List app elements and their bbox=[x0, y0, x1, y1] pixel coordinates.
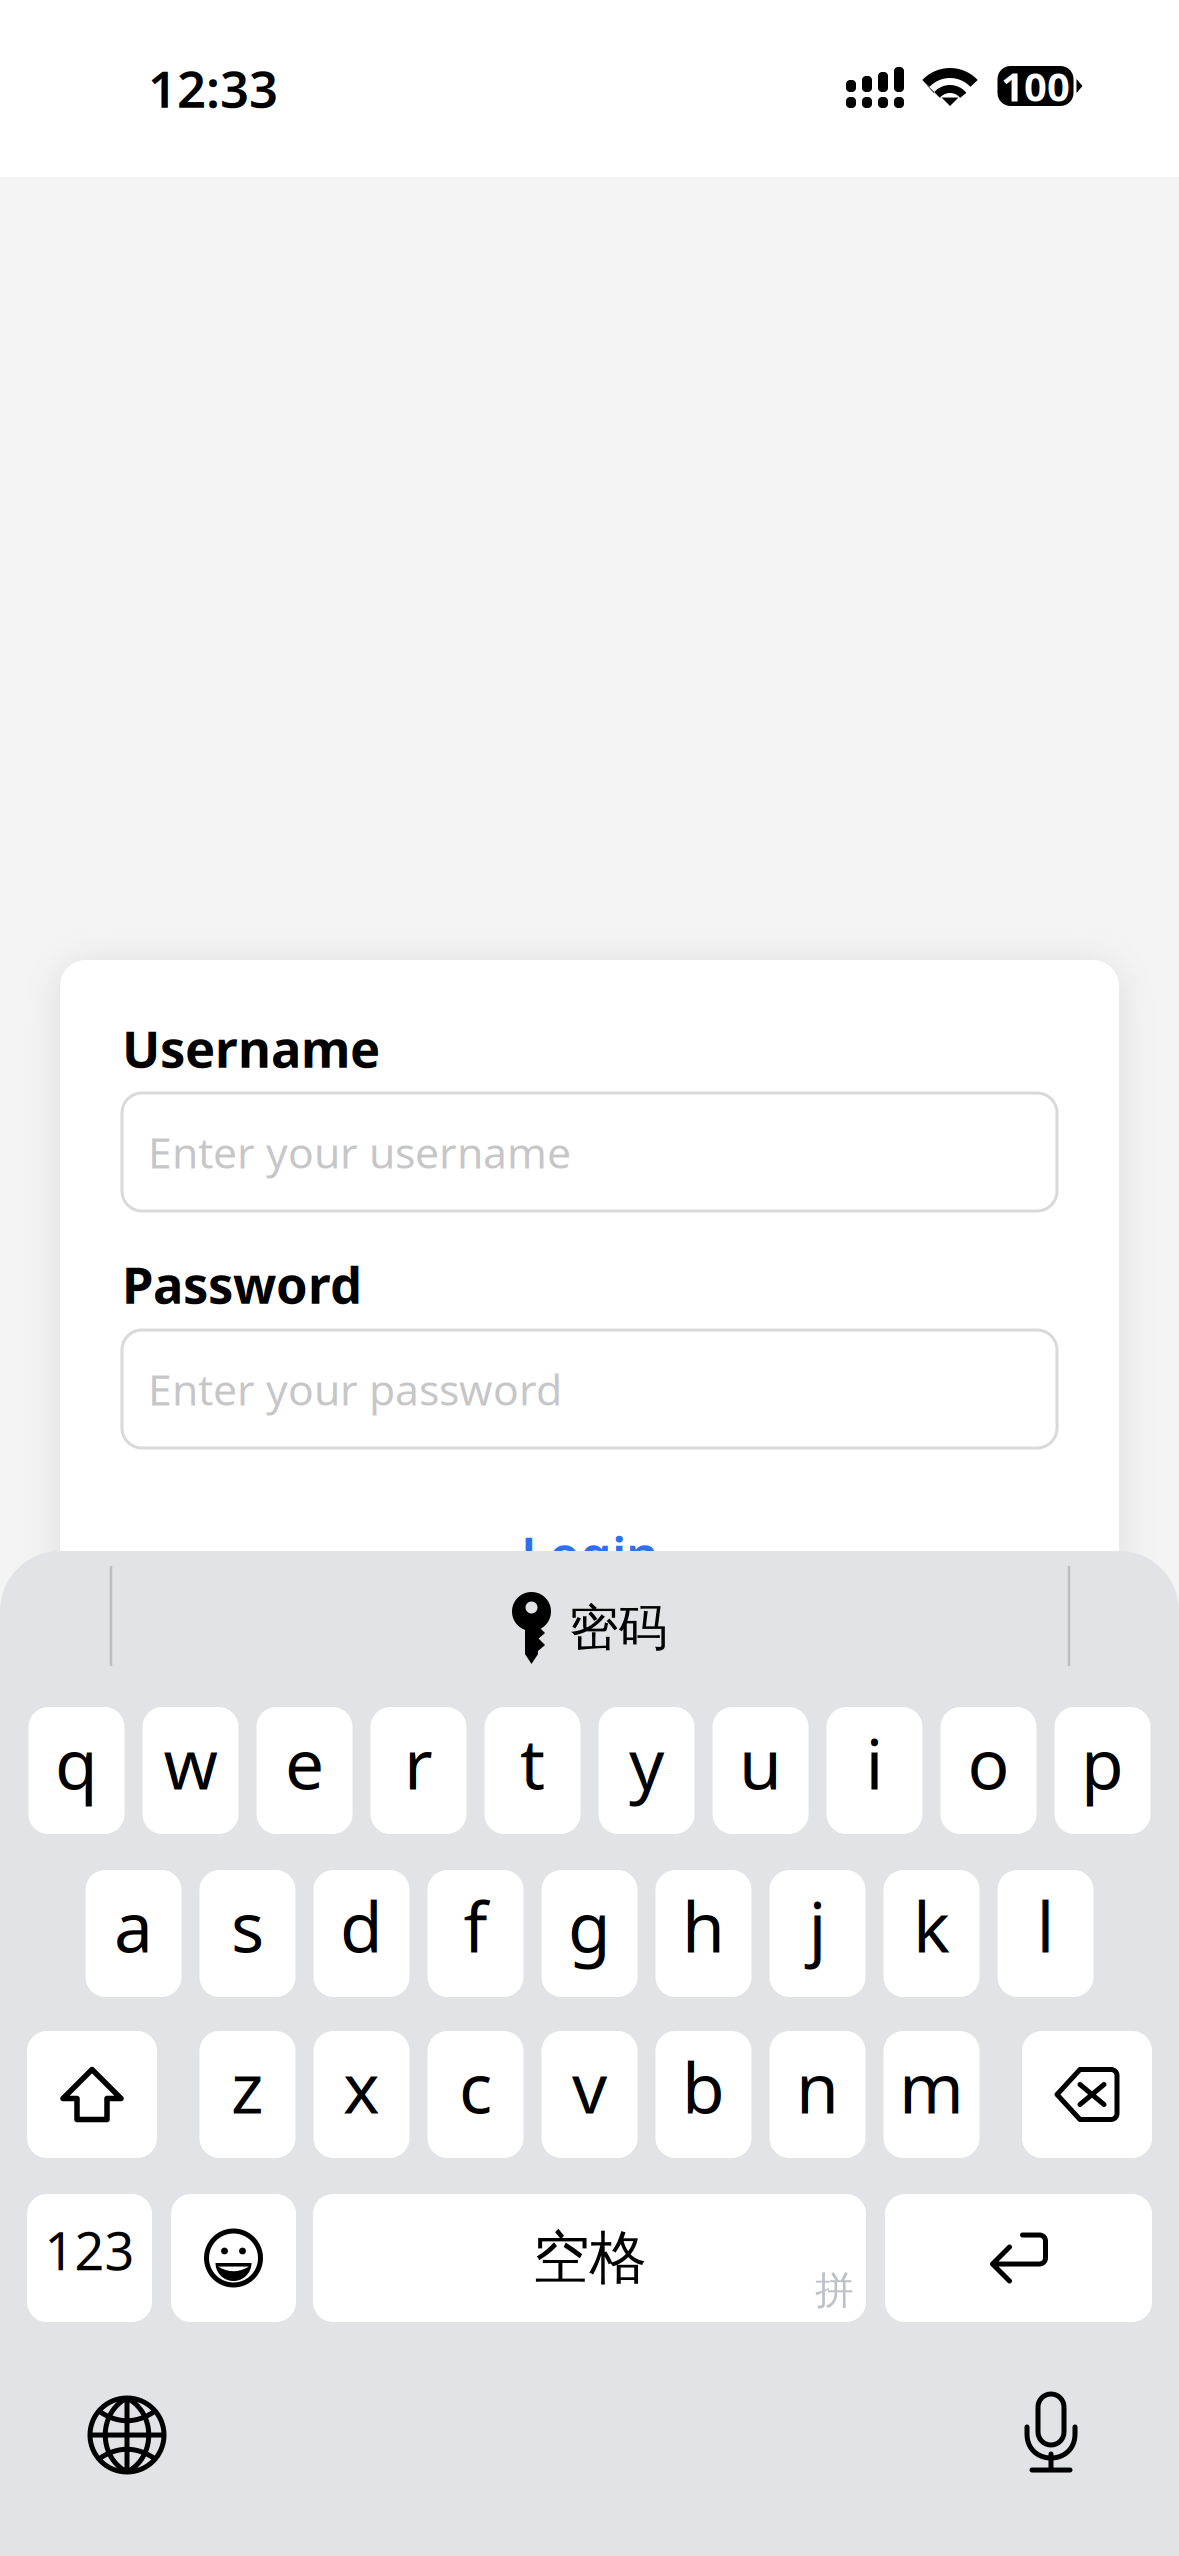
staticText: w bbox=[163, 1716, 217, 1809]
staticText: i bbox=[865, 1716, 883, 1809]
button[interactable]: w bbox=[142, 1707, 238, 1834]
staticText: Password bbox=[122, 1250, 362, 1318]
staticText: Enter your username bbox=[148, 1124, 571, 1180]
button[interactable]: d bbox=[313, 1870, 409, 1997]
button[interactable]: n bbox=[769, 2031, 865, 2158]
button[interactable]: Enter your password bbox=[122, 1330, 1057, 1448]
button[interactable]: u bbox=[712, 1707, 808, 1834]
button[interactable]: Shift bbox=[27, 2031, 157, 2158]
button[interactable]: h bbox=[655, 1870, 751, 1997]
button[interactable]: Delete bbox=[1022, 2031, 1152, 2158]
button[interactable]: z bbox=[199, 2031, 295, 2158]
button[interactable]: s bbox=[199, 1870, 295, 1997]
staticText: u bbox=[739, 1716, 782, 1809]
button[interactable]: v bbox=[541, 2031, 637, 2158]
staticText: z bbox=[231, 2040, 264, 2133]
staticText: k bbox=[913, 1879, 950, 1972]
button[interactable]: Emoji bbox=[171, 2194, 296, 2322]
staticText: a bbox=[114, 1879, 153, 1972]
button[interactable]: l bbox=[997, 1870, 1093, 1997]
staticText: 拼 bbox=[815, 2266, 854, 2314]
staticText: q bbox=[55, 1716, 98, 1809]
staticText: s bbox=[231, 1879, 264, 1972]
staticText: j bbox=[808, 1879, 826, 1972]
staticText: Username bbox=[122, 1014, 380, 1082]
button[interactable]: Enter your username bbox=[122, 1093, 1057, 1211]
button[interactable]: 空格 bbox=[313, 2194, 866, 2322]
button[interactable]: Dictation bbox=[991, 2372, 1111, 2492]
staticText: m bbox=[899, 2040, 964, 2133]
button[interactable]: y bbox=[598, 1707, 694, 1834]
button[interactable]: q bbox=[28, 1707, 124, 1834]
button[interactable]: t bbox=[484, 1707, 580, 1834]
staticText: f bbox=[463, 1879, 487, 1972]
button[interactable]: o bbox=[940, 1707, 1036, 1834]
staticText: p bbox=[1081, 1716, 1124, 1809]
staticText: Enter your password bbox=[148, 1361, 562, 1417]
staticText: Login bbox=[521, 1520, 658, 1588]
button[interactable]: Switch keyboard bbox=[67, 2375, 187, 2495]
button[interactable]: r bbox=[370, 1707, 466, 1834]
button[interactable]: g bbox=[541, 1870, 637, 1997]
button[interactable]: c bbox=[427, 2031, 523, 2158]
staticText: 空格 bbox=[532, 2223, 646, 2293]
staticText: n bbox=[796, 2040, 839, 2133]
staticText: r bbox=[404, 1716, 433, 1809]
staticText: 密码 bbox=[569, 1598, 667, 1658]
staticText: d bbox=[340, 1879, 383, 1972]
staticText: l bbox=[1036, 1879, 1054, 1972]
button[interactable]: Return bbox=[885, 2194, 1152, 2322]
staticText: t bbox=[520, 1716, 545, 1809]
button[interactable]: Login bbox=[122, 1522, 1057, 1586]
button[interactable]: a bbox=[85, 1870, 181, 1997]
button[interactable]: j bbox=[769, 1870, 865, 1997]
staticText: 12:33 bbox=[148, 54, 278, 122]
button[interactable]: p bbox=[1054, 1707, 1150, 1834]
staticText: g bbox=[568, 1879, 611, 1972]
button[interactable]: x bbox=[313, 2031, 409, 2158]
staticText: c bbox=[459, 2040, 492, 2133]
staticText: h bbox=[682, 1879, 725, 1972]
staticText: e bbox=[285, 1716, 324, 1809]
button[interactable]: 123 bbox=[27, 2194, 152, 2322]
staticText: 100 bbox=[1001, 59, 1070, 112]
staticText: 123 bbox=[44, 2215, 134, 2285]
staticText: v bbox=[572, 2040, 607, 2133]
button[interactable]: e bbox=[256, 1707, 352, 1834]
staticText: y bbox=[629, 1716, 664, 1809]
button[interactable]: f bbox=[427, 1870, 523, 1997]
button[interactable]: m bbox=[883, 2031, 979, 2158]
button[interactable]: b bbox=[655, 2031, 751, 2158]
staticText: b bbox=[682, 2040, 725, 2133]
staticText: x bbox=[343, 2040, 380, 2133]
button[interactable]: i bbox=[826, 1707, 922, 1834]
staticText: o bbox=[967, 1716, 1009, 1809]
button[interactable]: k bbox=[883, 1870, 979, 1997]
